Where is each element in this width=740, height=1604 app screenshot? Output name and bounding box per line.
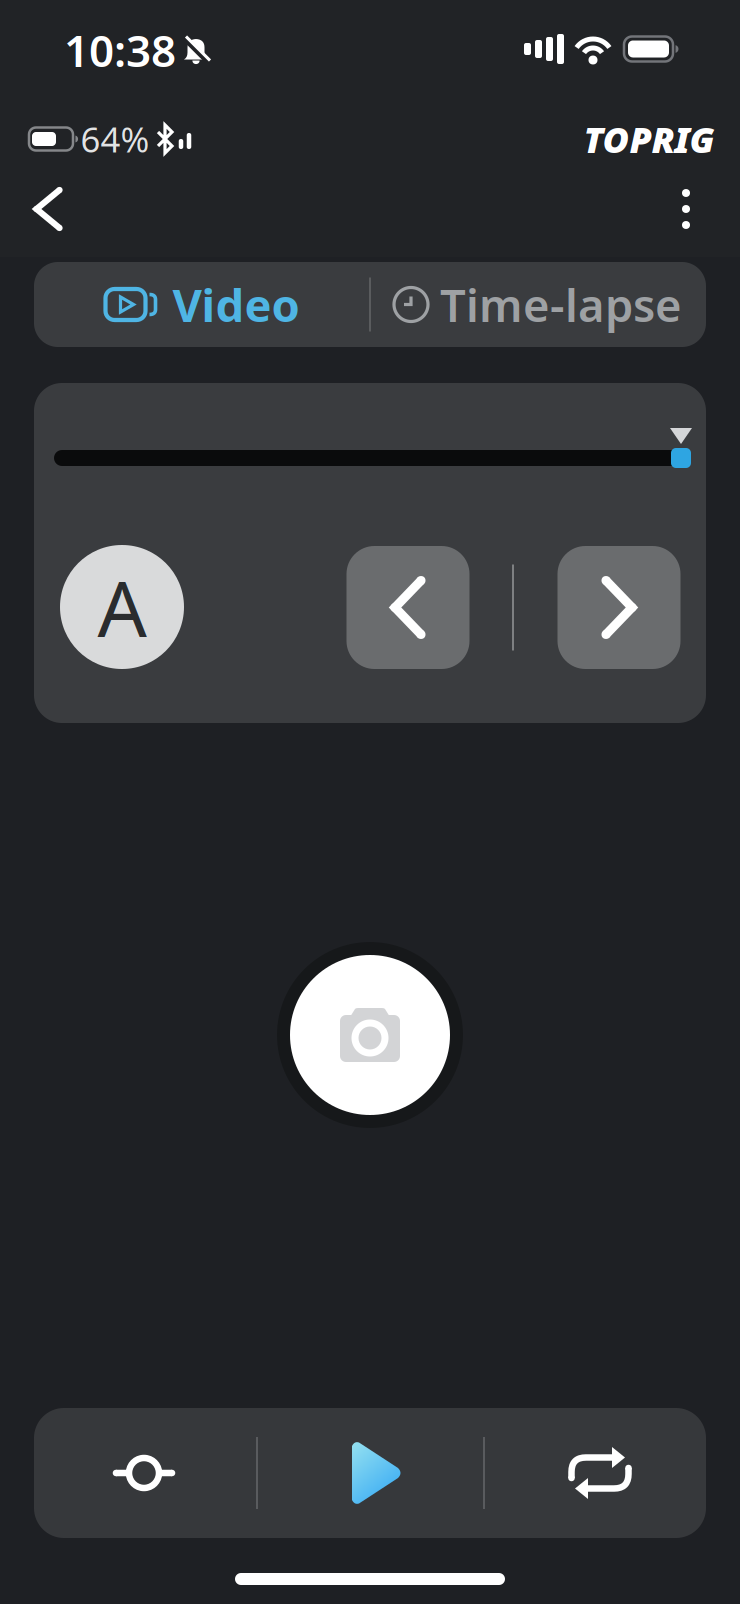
button[interactable]: Back xyxy=(18,179,78,239)
button[interactable]: Speed slider xyxy=(671,448,691,468)
staticText: TOPRIG xyxy=(583,115,714,163)
staticText: Video xyxy=(172,274,299,335)
button[interactable]: Rotate left xyxy=(346,546,469,669)
staticText: 10:38 xyxy=(64,21,176,79)
button[interactable]: Rotate right xyxy=(557,546,680,669)
button[interactable]: Video xyxy=(37,262,367,347)
button[interactable]: Time-lapse xyxy=(373,262,703,347)
button[interactable]: Loop xyxy=(550,1423,650,1523)
button[interactable]: Auto xyxy=(60,545,184,669)
staticText: 64% xyxy=(80,116,149,162)
button[interactable]: Shutter xyxy=(277,942,463,1128)
staticText: Time-lapse xyxy=(440,274,682,335)
staticText: A xyxy=(97,556,146,658)
button[interactable]: Play xyxy=(326,1423,426,1523)
button[interactable]: Adjust xyxy=(94,1423,194,1523)
button[interactable]: More options xyxy=(661,179,711,239)
